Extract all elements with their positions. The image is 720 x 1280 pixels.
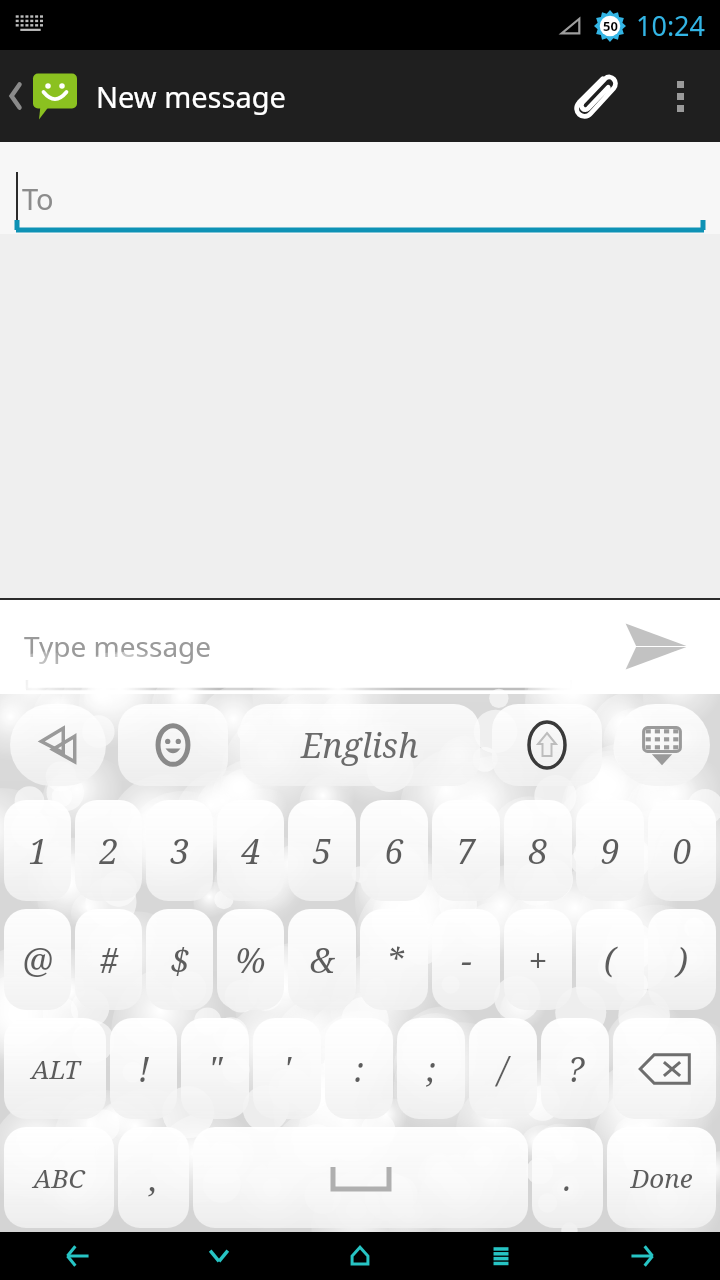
staticText: 7 (456, 828, 476, 874)
button[interactable]: Back (8, 1232, 148, 1280)
button[interactable]: 2 (75, 800, 142, 901)
button[interactable]: To (16, 172, 704, 222)
staticText: 1 (28, 828, 48, 874)
staticText: * (386, 937, 403, 983)
button[interactable]: @ (4, 909, 71, 1010)
staticText: 8 (528, 828, 548, 874)
button[interactable]: 3 (146, 800, 213, 901)
staticText: To (22, 179, 54, 218)
button[interactable]: $ (146, 909, 213, 1010)
staticText: 9 (600, 828, 620, 874)
staticText: Type message (24, 627, 574, 665)
staticText: 5 (312, 828, 332, 874)
staticText: ? (567, 1046, 584, 1092)
button[interactable]: Back (0, 71, 84, 121)
staticText: 50 (603, 17, 618, 35)
button[interactable]: 7 (432, 800, 500, 901)
other: Backspace (638, 1052, 692, 1086)
staticText: : (354, 1046, 364, 1092)
button[interactable]: Done (607, 1127, 716, 1228)
staticText: " (208, 1046, 222, 1092)
button[interactable]: Shift (492, 704, 602, 786)
button[interactable]: Type message (24, 598, 574, 694)
button[interactable]: Backspace (613, 1018, 716, 1119)
button[interactable]: 1 (4, 800, 71, 901)
staticText: ) (676, 937, 688, 983)
button[interactable]: ; (397, 1018, 465, 1119)
button[interactable]: " (181, 1018, 249, 1119)
button[interactable]: Forward (571, 1232, 712, 1280)
staticText: 2 (99, 828, 119, 874)
button[interactable]: Sound (10, 704, 106, 786)
staticText: ; (426, 1046, 436, 1092)
staticText: $ (170, 937, 190, 983)
other: Space (333, 1167, 389, 1189)
button[interactable]: ( (576, 909, 644, 1010)
staticText: 4 (241, 828, 261, 874)
staticText: English (301, 722, 419, 768)
staticText: ! (138, 1046, 150, 1092)
button[interactable]: ' (253, 1018, 321, 1119)
staticText: % (235, 937, 266, 983)
staticText: ABC (33, 1160, 85, 1195)
button[interactable]: ABC (4, 1127, 114, 1228)
button[interactable]: More options (640, 50, 720, 142)
staticText: New message (96, 77, 286, 116)
button[interactable]: English (240, 704, 480, 786)
staticText: + (528, 937, 548, 983)
button[interactable]: Emoji (118, 704, 228, 786)
button[interactable]: 0 (648, 800, 716, 901)
button[interactable]: ALT (4, 1018, 106, 1119)
button[interactable]: 5 (288, 800, 356, 901)
button[interactable]: ) (648, 909, 716, 1010)
button[interactable]: 6 (360, 800, 428, 901)
button[interactable]: Hide keyboard (148, 1232, 289, 1280)
staticText: Done (630, 1160, 693, 1195)
staticText: - (461, 937, 472, 983)
button[interactable]: 9 (576, 800, 644, 901)
button[interactable]: Hide keyboard (614, 704, 710, 786)
button[interactable]: / (469, 1018, 537, 1119)
staticText: # (99, 937, 119, 983)
button[interactable]: , (118, 1127, 189, 1228)
button[interactable]: Home (289, 1232, 430, 1280)
staticText: 10:24 (636, 7, 706, 44)
staticText: @ (22, 937, 54, 983)
button[interactable]: Attach (544, 50, 640, 142)
button[interactable]: : (325, 1018, 393, 1119)
staticText: / (498, 1046, 508, 1092)
button[interactable]: ? (541, 1018, 609, 1119)
button[interactable]: # (75, 909, 142, 1010)
staticText: ' (283, 1046, 291, 1092)
staticText: , (149, 1155, 158, 1201)
staticText: 0 (672, 828, 692, 874)
button[interactable]: - (432, 909, 500, 1010)
button[interactable]: Send (590, 598, 720, 694)
button[interactable]: ! (110, 1018, 177, 1119)
button[interactable]: * (360, 909, 428, 1010)
button[interactable]: Space (193, 1127, 528, 1228)
button[interactable]: + (504, 909, 572, 1010)
button[interactable]: . (532, 1127, 603, 1228)
button[interactable]: Recents (430, 1232, 571, 1280)
button[interactable]: % (217, 909, 284, 1010)
staticText: ( (604, 937, 616, 983)
staticText: & (309, 937, 335, 983)
staticText: 6 (384, 828, 404, 874)
staticText: 3 (170, 828, 190, 874)
button[interactable]: 4 (217, 800, 284, 901)
staticText: ALT (31, 1051, 80, 1086)
button[interactable]: & (288, 909, 356, 1010)
button[interactable]: 8 (504, 800, 572, 901)
staticText: . (563, 1155, 572, 1201)
